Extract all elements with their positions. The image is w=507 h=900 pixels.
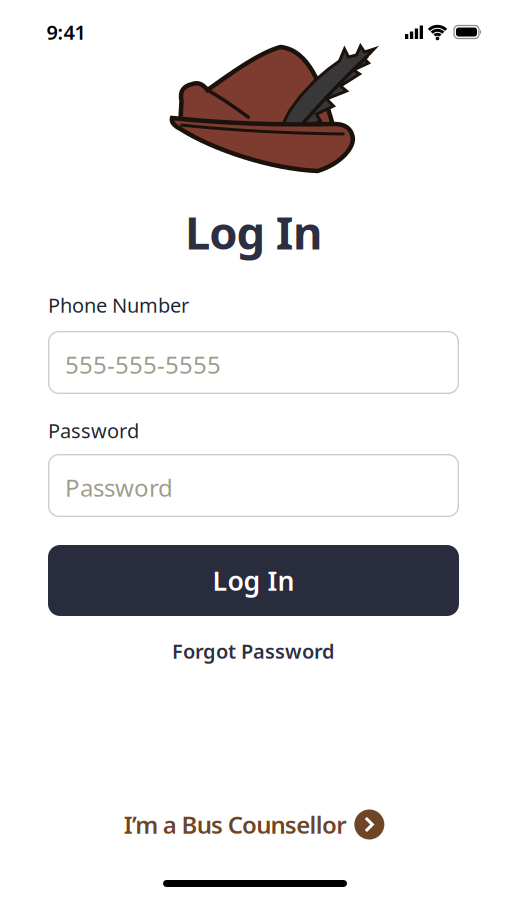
- staticText: Log In: [212, 563, 294, 598]
- staticText: Phone Number: [48, 292, 189, 318]
- textField[interactable]: 555-555-5555: [65, 349, 459, 380]
- button[interactable]: Log In: [48, 545, 459, 616]
- staticText: 555-555-5555: [65, 349, 221, 380]
- staticText: Password: [65, 472, 173, 503]
- staticText: Log In: [185, 202, 322, 262]
- button[interactable]: I’m a Bus Counsellor: [124, 809, 384, 840]
- staticText: 9:41: [46, 19, 85, 45]
- staticText: I’m a Bus Counsellor: [124, 809, 346, 840]
- button[interactable]: Forgot Password: [172, 638, 335, 664]
- staticText: Password: [48, 417, 139, 444]
- staticText: Forgot Password: [172, 638, 335, 664]
- secureTextField[interactable]: Password: [65, 472, 459, 503]
